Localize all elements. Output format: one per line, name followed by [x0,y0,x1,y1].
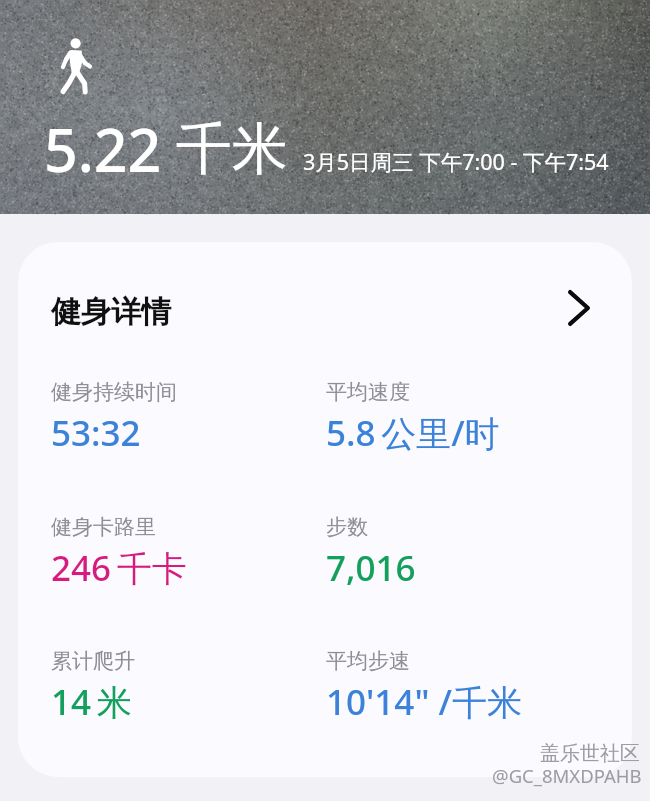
staticText: 千米 [176,114,288,185]
staticText: 10'14" /千米 [326,678,522,726]
staticText: 盖乐世社区 [540,741,640,766]
staticText: 3月5日周三 下午7:00 - 下午7:54 [303,147,609,176]
staticText: 246 千卡 [51,544,187,592]
staticText: @GC_8MXDPAHB [492,763,642,788]
staticText: 平均步速 [326,648,410,674]
staticText: 累计爬升 [51,648,135,674]
other: Walking [58,35,94,96]
staticText: 步数 [326,514,368,540]
button[interactable]: 健身详情 [18,242,632,382]
staticText: 健身卡路里 [51,514,156,540]
staticText: 14 米 [51,678,132,726]
staticText: 5.22 [44,109,162,189]
staticText: 健身详情 [51,293,171,331]
staticText: 健身持续时间 [51,379,177,405]
staticText: 53:32 [51,409,141,457]
staticText: 7,016 [326,544,416,592]
staticText: 5.8 公里/时 [326,409,500,457]
staticText: 平均速度 [326,379,410,405]
